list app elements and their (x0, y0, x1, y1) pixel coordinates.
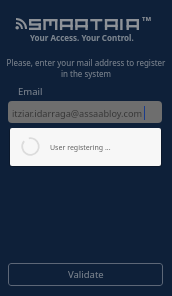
staticText: Your Access. Your Control. (30, 32, 134, 43)
button[interactable]: Validate (8, 263, 163, 286)
staticText: TM (142, 15, 152, 23)
staticText: User registering ... (50, 143, 111, 153)
staticText: Validate (68, 268, 104, 281)
staticText: Please, enter your mail address to regis… (0, 57, 172, 79)
button[interactable]: itziar.idarraga@assaabloy.com (8, 101, 162, 123)
staticText: itziar.idarraga@assaabloy.com (12, 107, 143, 120)
other: SMARTAIR (29, 19, 139, 30)
other: SMARTAIR signal logo (15, 19, 26, 30)
staticText: Email (18, 85, 43, 98)
